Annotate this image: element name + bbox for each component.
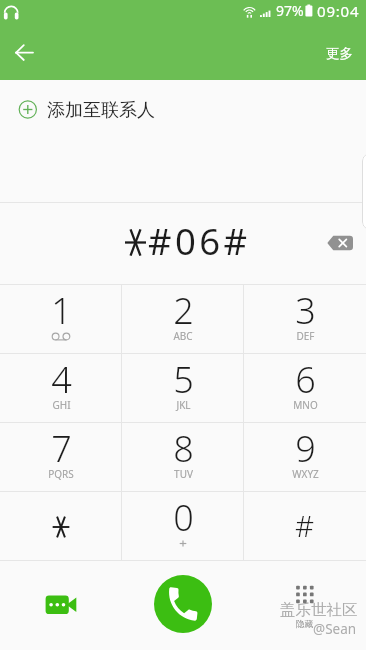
staticText: 97% (276, 1, 304, 20)
staticText: 8 (173, 424, 194, 473)
button[interactable]: 1 (0, 284, 122, 353)
button[interactable]: 3 (244, 284, 366, 353)
staticText: 9 (295, 424, 316, 473)
staticText: 7 (51, 424, 72, 473)
staticText: 5 (173, 355, 194, 404)
button[interactable]: Backspace (318, 222, 362, 266)
staticText: 0 (173, 493, 194, 542)
button[interactable]: # (244, 491, 366, 560)
staticText: 隐藏 (296, 619, 313, 630)
button[interactable]: 9 (244, 422, 366, 491)
staticText: MNO (293, 398, 318, 412)
button[interactable]: 6 (244, 353, 366, 422)
staticText: 1 (51, 286, 72, 335)
button[interactable]: Hide keypad (281, 574, 329, 622)
staticText: 2 (173, 286, 194, 335)
button[interactable]: 7 (0, 422, 122, 491)
button[interactable]: 0 (122, 491, 244, 560)
staticText: PQRS (48, 467, 74, 481)
button[interactable]: 8 (122, 422, 244, 491)
staticText: 盖乐世社区 (280, 600, 358, 620)
staticText: TUV (174, 467, 193, 481)
button[interactable]: 更多 (312, 35, 366, 72)
staticText: GHI (52, 398, 71, 412)
staticText: ABC (173, 329, 193, 343)
button[interactable]: 4 (0, 353, 122, 422)
staticText: @Sean (313, 620, 357, 638)
button[interactable]: 添加至联系人 (0, 82, 366, 137)
staticText: JKL (176, 398, 191, 412)
staticText: 添加至联系人 (47, 99, 155, 122)
staticText: WXYZ (292, 467, 319, 481)
staticText: 6 (295, 355, 316, 404)
staticText: 09:04 (317, 1, 360, 21)
staticText: 3 (295, 286, 316, 335)
staticText: 4 (51, 355, 72, 404)
staticText: 更多 (326, 45, 353, 62)
staticText: #06# (148, 216, 251, 266)
button[interactable]: 2 (122, 284, 244, 353)
button[interactable]: 5 (122, 353, 244, 422)
staticText: DEF (296, 329, 315, 343)
staticText: # (295, 505, 315, 545)
button[interactable] (0, 491, 122, 560)
button[interactable]: Call (154, 575, 212, 633)
button[interactable]: Back (8, 37, 40, 69)
button[interactable]: Video call (37, 581, 85, 629)
